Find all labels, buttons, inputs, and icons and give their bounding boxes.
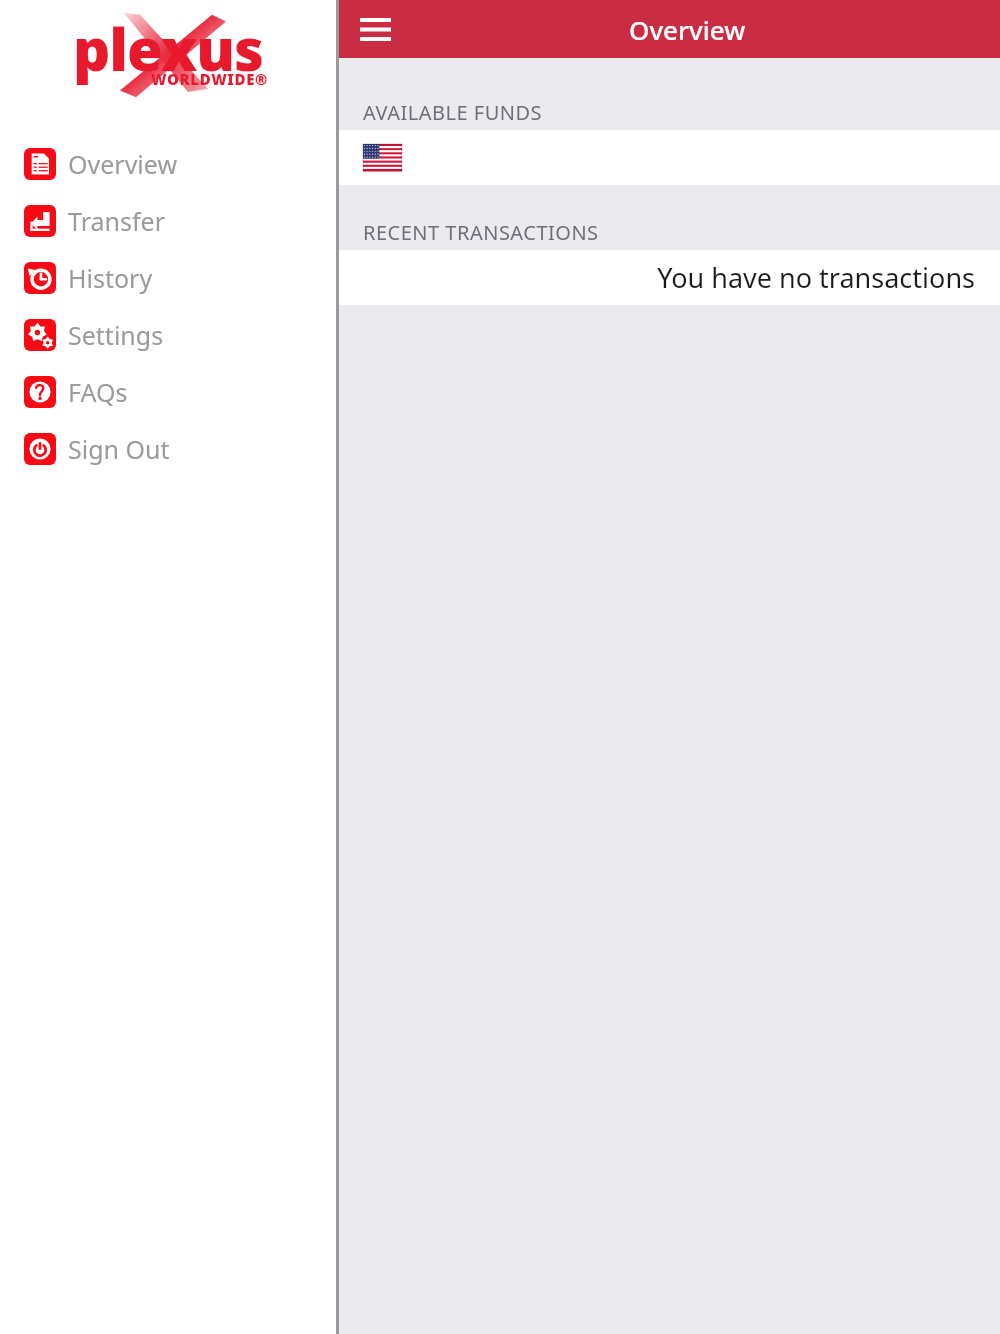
staticText: Sign Out	[68, 432, 170, 466]
staticText: Overview	[68, 147, 178, 181]
button[interactable]: History	[0, 249, 336, 306]
staticText: Transfer	[68, 204, 165, 238]
staticText: AVAILABLE FUNDS	[363, 99, 543, 126]
staticText: You have no transactions	[657, 259, 975, 296]
staticText: plexus	[73, 9, 264, 88]
staticText: Settings	[68, 318, 164, 352]
staticText: Overview	[629, 12, 746, 47]
button[interactable]: Open navigation menu	[351, 5, 399, 53]
staticText: RECENT TRANSACTIONS	[363, 219, 599, 246]
button[interactable]: United States Dollar	[339, 130, 1000, 185]
button[interactable]: FAQs	[0, 363, 336, 420]
staticText: FAQs	[68, 375, 128, 409]
other: United States Dollar	[363, 144, 402, 171]
button[interactable]: Overview	[0, 135, 336, 192]
button[interactable]: Settings	[0, 306, 336, 363]
staticText: WORLDWIDE®	[151, 69, 268, 89]
button[interactable]: Transfer	[0, 192, 336, 249]
staticText: History	[68, 261, 153, 295]
button[interactable]: Sign Out	[0, 420, 336, 477]
